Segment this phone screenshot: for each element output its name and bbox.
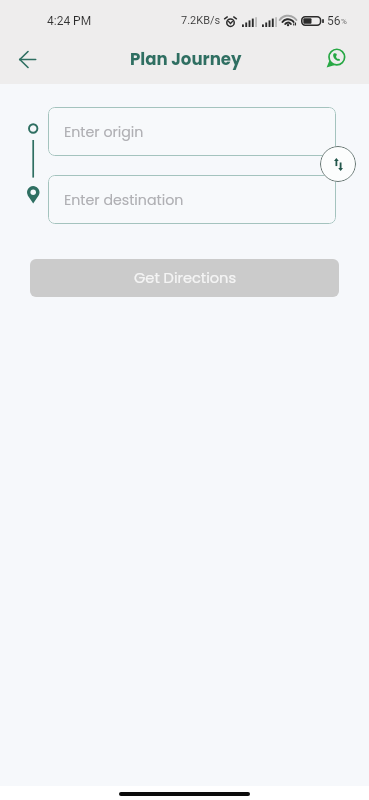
- staticText: 56: [327, 14, 341, 28]
- button[interactable]: Swap origin and destination: [320, 146, 356, 182]
- button[interactable]: Back: [6, 46, 48, 72]
- button[interactable]: Enter destination: [48, 175, 336, 224]
- button[interactable]: WhatsApp: [322, 44, 350, 72]
- staticText: Get Directions: [134, 268, 237, 288]
- button[interactable]: Get Directions: [30, 259, 339, 297]
- staticText: Enter origin: [64, 122, 144, 142]
- staticText: %: [341, 17, 347, 26]
- button[interactable]: Enter origin: [48, 107, 336, 156]
- staticText: 4:24 PM: [47, 14, 92, 28]
- staticText: 7.2KB/s: [181, 14, 221, 27]
- staticText: Plan Journey: [130, 48, 242, 71]
- staticText: Enter destination: [64, 190, 184, 210]
